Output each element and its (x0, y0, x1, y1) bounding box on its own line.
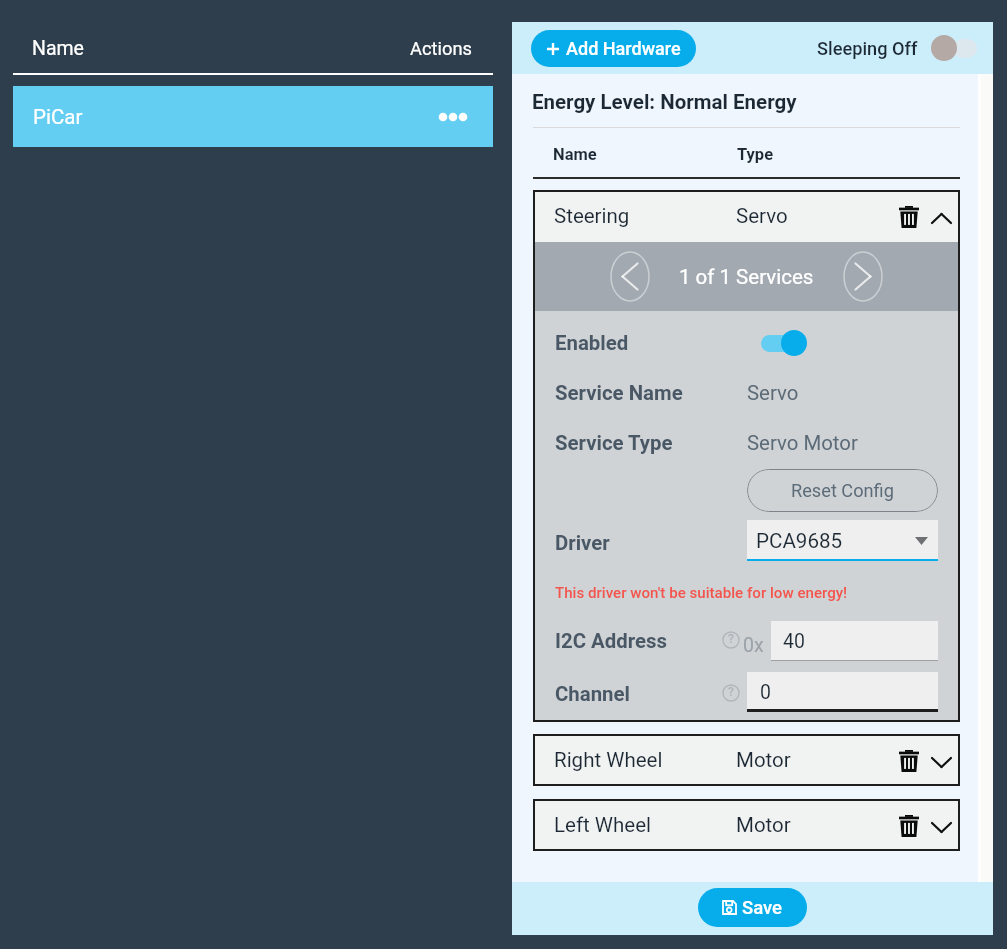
staticText: Service Name (555, 381, 683, 405)
button[interactable]: Reset Config (747, 469, 938, 512)
button[interactable]: Delete Left Wheel (891, 808, 927, 844)
button[interactable]: Previous service (610, 251, 650, 302)
button[interactable]: Sleeping Off (817, 35, 977, 61)
button[interactable]: Save (698, 888, 807, 927)
staticText: 0 (760, 681, 771, 704)
staticText: Name (32, 37, 84, 60)
button[interactable]: Add Hardware (531, 30, 696, 67)
staticText: 40 (783, 630, 805, 653)
button[interactable]: PCA9685 (747, 520, 938, 561)
button[interactable]: 40 (771, 621, 938, 661)
staticText: Servo (736, 204, 788, 228)
button[interactable]: More actions (431, 95, 475, 139)
staticText: Servo Motor (747, 431, 858, 455)
staticText: Type (737, 145, 774, 164)
staticText: ? (728, 632, 734, 646)
staticText: 1 of 1 Services (679, 265, 814, 289)
staticText: Name (553, 145, 737, 164)
button[interactable]: PiCar (13, 86, 493, 147)
staticText: Steering (554, 204, 630, 228)
staticText: I2C Address (555, 629, 668, 653)
staticText: Service Type (555, 431, 673, 455)
button[interactable]: Right Wheel (533, 734, 960, 786)
staticText: Right Wheel (554, 748, 663, 772)
button[interactable]: Left Wheel (533, 799, 960, 851)
button[interactable]: Delete Right Wheel (891, 743, 927, 779)
staticText: This driver won't be suitable for low en… (555, 584, 848, 602)
button[interactable]: 0 (747, 672, 938, 712)
button[interactable]: Delete Steering (891, 199, 927, 235)
button[interactable]: Collapse (923, 200, 959, 236)
staticText: ? (728, 685, 734, 699)
button[interactable]: Expand (923, 744, 959, 780)
staticText: Servo (747, 381, 799, 405)
staticText: Energy Level: Normal Energy (532, 90, 797, 114)
staticText: Channel (555, 682, 630, 706)
staticText: Actions (410, 38, 472, 59)
staticText: Motor (736, 813, 791, 837)
button[interactable]: Enabled toggle (761, 329, 809, 357)
staticText: Reset Config (791, 480, 894, 501)
staticText: Add Hardware (566, 38, 681, 59)
button[interactable]: Next service (843, 251, 883, 302)
staticText: PCA9685 (756, 529, 843, 553)
staticText: Driver (555, 531, 610, 555)
staticText: Motor (736, 748, 791, 772)
staticText: Left Wheel (554, 813, 652, 837)
staticText: Save (742, 897, 783, 919)
button[interactable]: Expand (923, 809, 959, 845)
staticText: 0x (743, 634, 764, 657)
staticText: PiCar (33, 105, 83, 129)
staticText: Sleeping Off (817, 38, 918, 59)
staticText: Enabled (555, 331, 629, 355)
button[interactable]: Steering (533, 190, 960, 242)
